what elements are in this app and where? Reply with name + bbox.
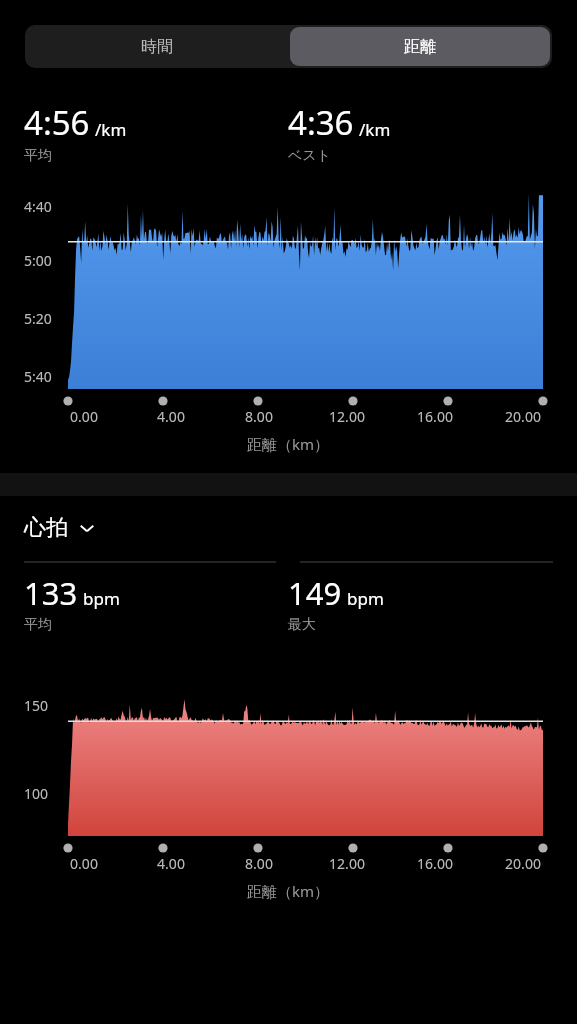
staticText: 20.00 — [505, 407, 541, 426]
staticText: 距離（km） — [247, 434, 330, 454]
staticText: bpm — [83, 587, 120, 610]
staticText: 4:56 — [24, 100, 90, 145]
staticText: 4:40 — [24, 197, 52, 216]
button[interactable]: 心拍 — [24, 514, 96, 542]
staticText: 16.00 — [417, 854, 453, 873]
staticText: 平均 — [24, 147, 52, 165]
staticText: 距離 — [404, 37, 436, 57]
staticText: 100 — [24, 784, 49, 803]
staticText: 最大 — [288, 616, 316, 634]
staticText: bpm — [347, 587, 384, 610]
staticText: ベスト — [288, 147, 331, 165]
staticText: 平均 — [24, 616, 52, 634]
staticText: 時間 — [141, 37, 173, 57]
staticText: 距離（km） — [247, 881, 330, 901]
staticText: 4.00 — [157, 407, 185, 426]
button[interactable]: 距離 — [290, 27, 550, 66]
staticText: 16.00 — [417, 407, 453, 426]
staticText: 4.00 — [157, 854, 185, 873]
staticText: 4:36 — [288, 100, 354, 145]
staticText: 0.00 — [70, 854, 98, 873]
staticText: 133 — [24, 572, 78, 614]
staticText: 8.00 — [245, 407, 273, 426]
staticText: 0.00 — [70, 407, 98, 426]
staticText: 149 — [288, 572, 342, 614]
staticText: 12.00 — [329, 407, 365, 426]
staticText: 8.00 — [245, 854, 273, 873]
staticText: /km — [95, 118, 127, 141]
staticText: /km — [359, 118, 391, 141]
button[interactable]: 時間 — [25, 25, 288, 68]
staticText: 5:40 — [24, 367, 52, 386]
staticText: 心拍 — [24, 514, 68, 542]
staticText: 150 — [24, 696, 49, 715]
staticText: 5:00 — [24, 251, 52, 270]
other: Expand heart rate — [78, 519, 96, 537]
staticText: 5:20 — [24, 309, 52, 328]
staticText: 12.00 — [329, 854, 365, 873]
staticText: 20.00 — [505, 854, 541, 873]
